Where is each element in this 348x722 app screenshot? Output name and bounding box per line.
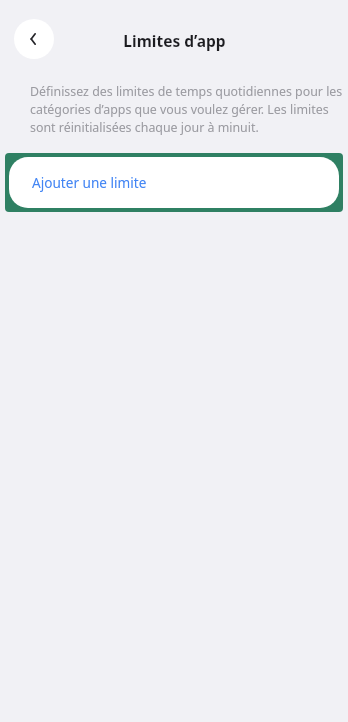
staticText: Ajouter une limite [32,173,147,192]
button[interactable]: Back [14,19,54,59]
staticText: Limites d’app [123,30,226,51]
button[interactable]: Ajouter une limite [9,157,339,208]
staticText: Définissez des limites de temps quotidie… [30,83,348,136]
